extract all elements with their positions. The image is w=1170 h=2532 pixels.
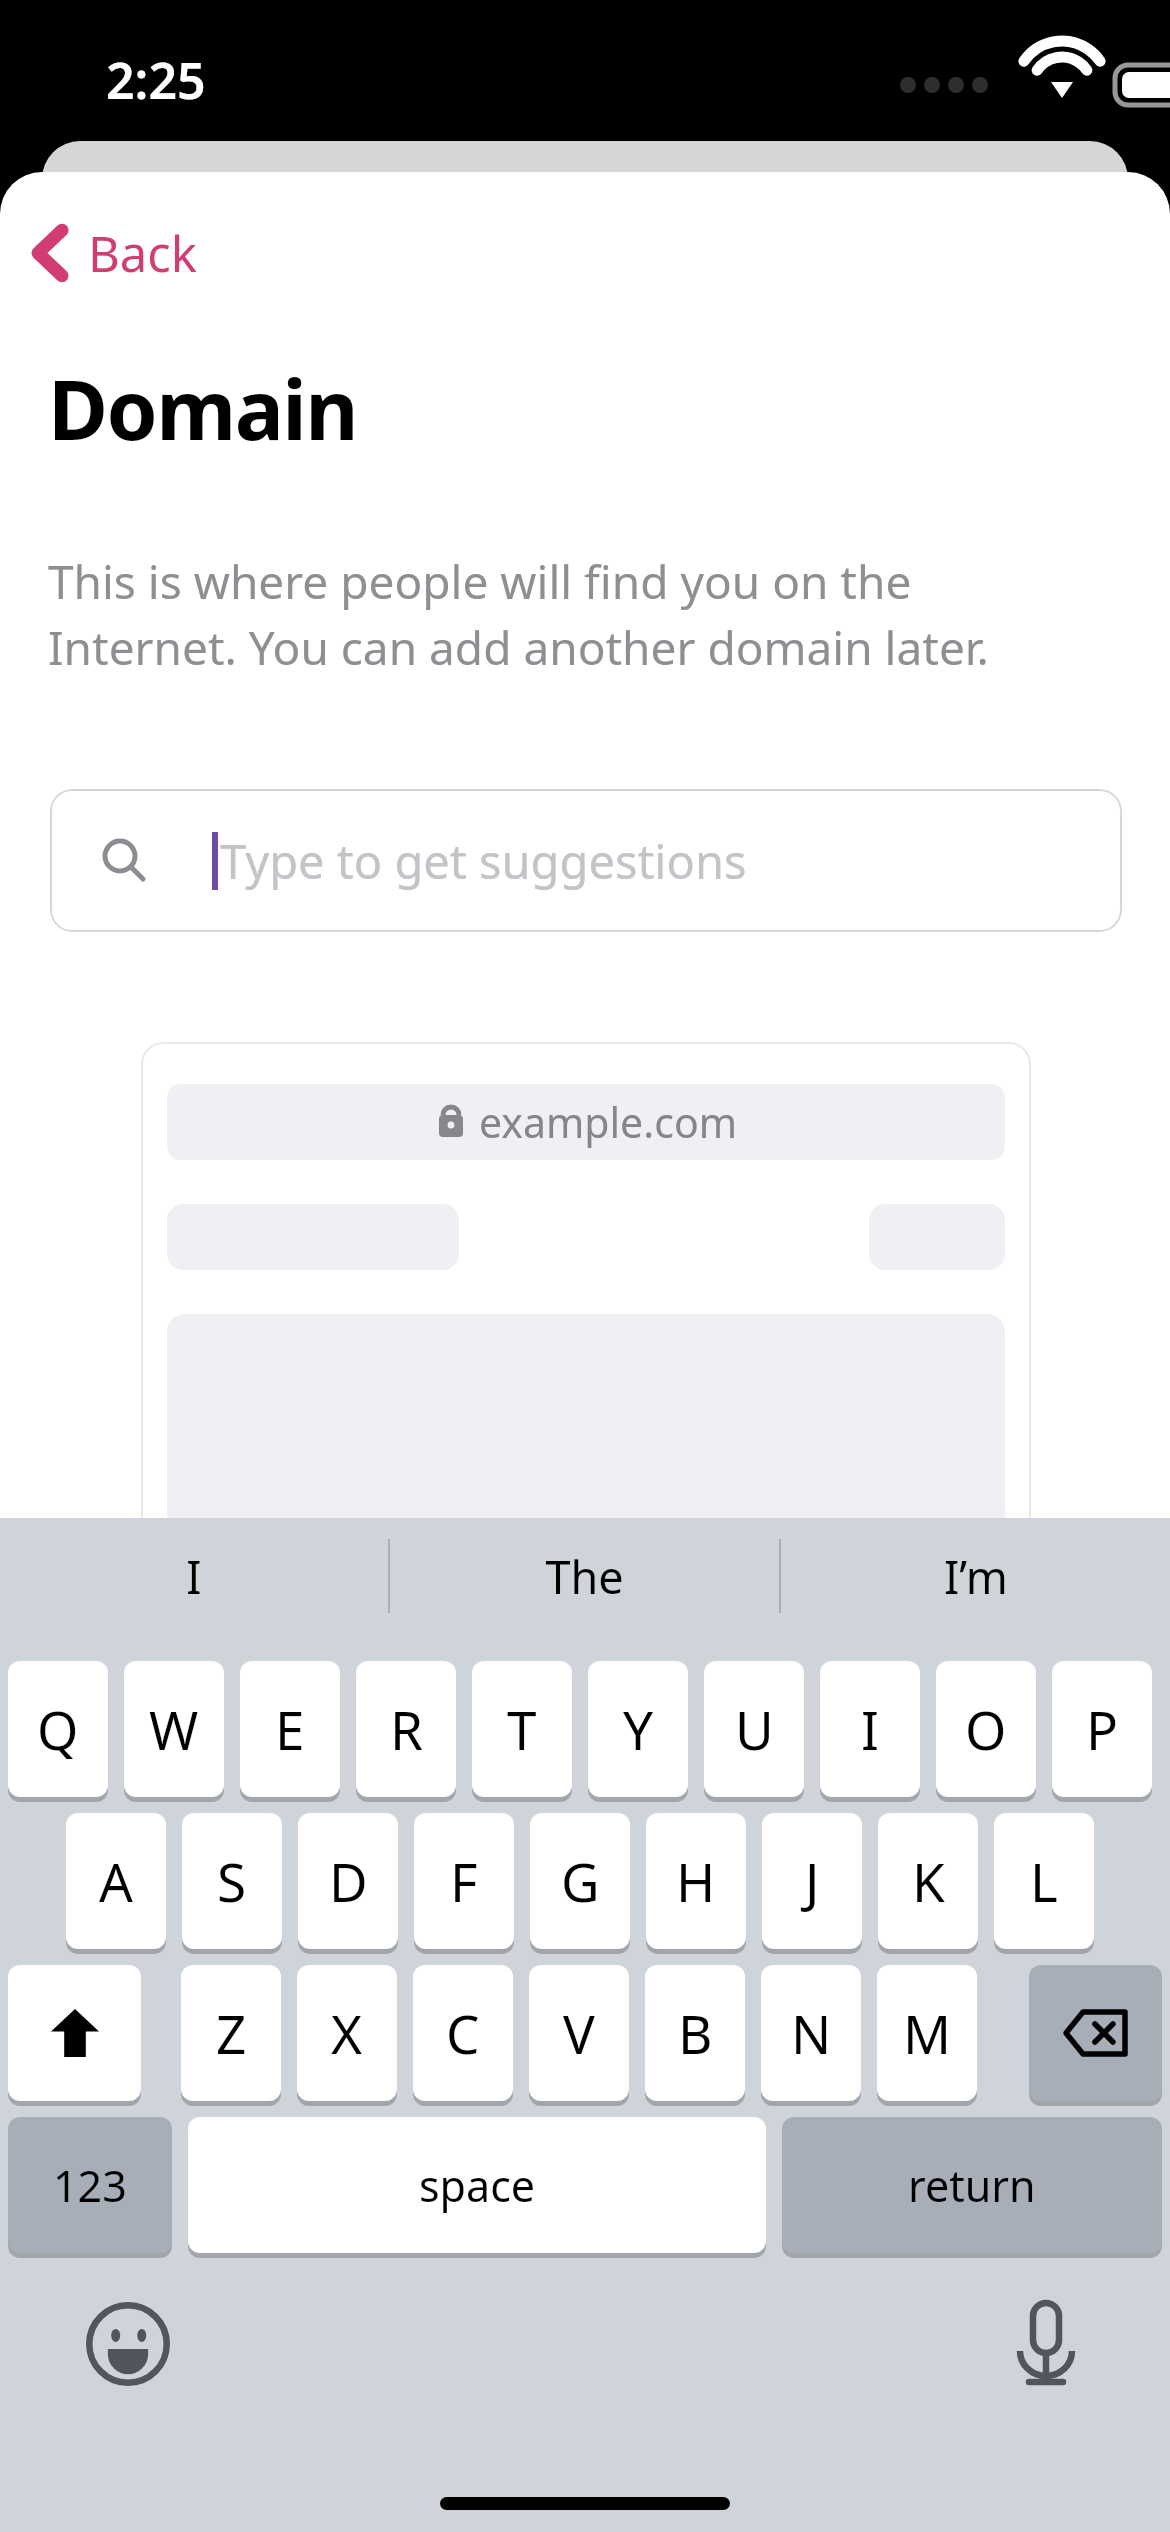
button[interactable]: S: [182, 1813, 282, 1949]
button[interactable]: P: [1052, 1661, 1152, 1797]
staticText: example.com: [479, 1094, 738, 1150]
staticText: S: [217, 1845, 247, 1917]
staticText: K: [912, 1845, 945, 1917]
button[interactable]: F: [414, 1813, 514, 1949]
button[interactable]: I: [820, 1661, 920, 1797]
staticText: H: [676, 1845, 716, 1917]
staticText: This is where people will find you on th…: [48, 550, 1088, 678]
button[interactable]: R: [356, 1661, 456, 1797]
button[interactable]: Y: [588, 1661, 688, 1797]
staticText: B: [678, 1997, 713, 2069]
staticText: M: [903, 1997, 952, 2069]
button[interactable]: U: [704, 1661, 804, 1797]
button[interactable]: I’m: [781, 1518, 1170, 1634]
staticText: Back: [88, 220, 198, 287]
button[interactable]: return: [782, 2117, 1162, 2253]
staticText: return: [908, 2156, 1036, 2215]
button[interactable]: A: [66, 1813, 166, 1949]
staticText: A: [99, 1845, 133, 1917]
staticText: T: [507, 1693, 537, 1765]
button[interactable]: space: [188, 2117, 766, 2253]
staticText: The: [545, 1546, 624, 1607]
button[interactable]: Z: [181, 1965, 281, 2101]
staticText: 2:25: [106, 46, 206, 114]
button[interactable]: Search: [50, 789, 1122, 932]
button[interactable]: E: [240, 1661, 340, 1797]
staticText: U: [735, 1693, 774, 1765]
staticText: N: [791, 1997, 832, 2069]
button[interactable]: O: [936, 1661, 1036, 1797]
staticText: W: [149, 1693, 199, 1765]
staticText: D: [329, 1845, 368, 1917]
button[interactable]: M: [877, 1965, 977, 2101]
button[interactable]: V: [529, 1965, 629, 2101]
staticText: F: [450, 1845, 478, 1917]
button[interactable]: T: [472, 1661, 572, 1797]
button[interactable]: J: [762, 1813, 862, 1949]
button[interactable]: K: [878, 1813, 978, 1949]
staticText: V: [563, 1997, 595, 2069]
staticText: L: [1030, 1845, 1058, 1917]
staticText: G: [561, 1845, 600, 1917]
staticText: X: [331, 1997, 363, 2069]
staticText: C: [446, 1997, 480, 2069]
staticText: E: [275, 1693, 305, 1765]
staticText: I: [186, 1546, 202, 1607]
button[interactable]: C: [413, 1965, 513, 2101]
staticText: R: [390, 1693, 423, 1765]
staticText: Y: [623, 1693, 653, 1765]
button[interactable]: B: [645, 1965, 745, 2101]
button[interactable]: The: [390, 1518, 779, 1634]
button[interactable]: Shift: [8, 1965, 141, 2101]
button[interactable]: X: [297, 1965, 397, 2101]
staticText: P: [1086, 1693, 1119, 1765]
staticText: I’m: [944, 1546, 1008, 1607]
other: Search: [102, 838, 148, 884]
button[interactable]: G: [530, 1813, 630, 1949]
staticText: 123: [53, 2156, 127, 2215]
button[interactable]: Emoji keyboard: [80, 2296, 176, 2392]
button[interactable]: D: [298, 1813, 398, 1949]
button[interactable]: H: [646, 1813, 746, 1949]
staticText: Domain: [48, 352, 358, 464]
button[interactable]: Dictation: [998, 2296, 1094, 2392]
staticText: space: [419, 2156, 536, 2215]
staticText: J: [805, 1845, 820, 1917]
button[interactable]: Back: [30, 208, 198, 298]
button[interactable]: N: [761, 1965, 861, 2101]
button[interactable]: Q: [8, 1661, 108, 1797]
button[interactable]: L: [994, 1813, 1094, 1949]
staticText: I: [861, 1693, 879, 1765]
staticText: Q: [37, 1693, 79, 1765]
button[interactable]: W: [124, 1661, 224, 1797]
staticText: O: [965, 1693, 1007, 1765]
button[interactable]: 123: [8, 2117, 172, 2253]
button[interactable]: I: [0, 1518, 388, 1634]
button[interactable]: Delete: [1029, 1965, 1162, 2101]
staticText: Z: [216, 1997, 247, 2069]
staticText: Type to get suggestions: [220, 829, 747, 893]
